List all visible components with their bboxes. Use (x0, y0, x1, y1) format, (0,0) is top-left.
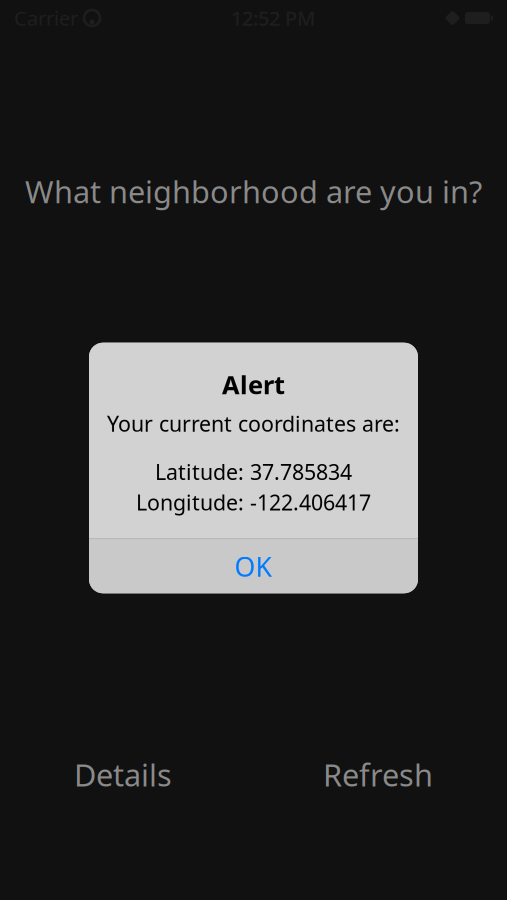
staticText: Longitude: -122.406417 (136, 488, 371, 516)
staticText: What neighborhood are you in? (25, 171, 482, 212)
button[interactable]: Details (74, 754, 172, 795)
staticText: 12:52 PM (231, 5, 315, 31)
staticText: OK (234, 549, 272, 584)
staticText: Alert (222, 368, 285, 401)
staticText: Carrier (14, 5, 78, 31)
staticText: Details (74, 754, 172, 795)
staticText: Your current coordinates are: (107, 409, 400, 438)
staticText: Latitude: 37.785834 (155, 458, 352, 486)
button[interactable]: OK (89, 539, 418, 593)
button[interactable]: Refresh (323, 754, 433, 795)
staticText: Refresh (323, 754, 433, 795)
